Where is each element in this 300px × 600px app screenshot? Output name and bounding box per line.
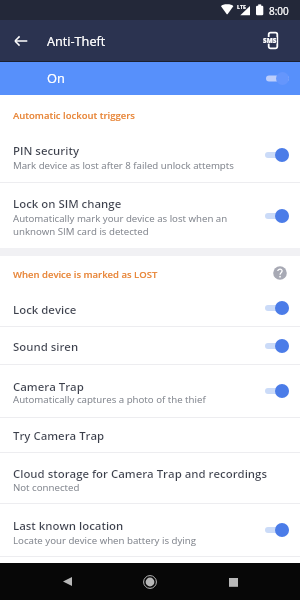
staticText: LTE xyxy=(237,3,246,10)
button[interactable]: Sound siren xyxy=(0,327,300,364)
staticText: Mark device as lost after 8 failed unloc… xyxy=(13,159,245,172)
button[interactable]: On xyxy=(0,62,300,95)
button[interactable]: Home xyxy=(136,568,164,596)
button[interactable]: SMS commands xyxy=(258,25,288,55)
button[interactable]: Recent apps xyxy=(219,568,247,596)
staticText: Not connected xyxy=(13,481,283,494)
staticText: Locate your device when battery is dying xyxy=(13,534,245,547)
staticText: Automatically captures a photo of the th… xyxy=(13,393,245,406)
button[interactable]: PIN security xyxy=(0,128,300,182)
button[interactable]: Try Camera Trap xyxy=(0,418,300,452)
staticText: On xyxy=(47,69,65,86)
button[interactable]: Back xyxy=(53,568,81,596)
staticText: When device is marked as LOST xyxy=(13,268,158,281)
staticText: Camera Trap xyxy=(13,379,245,395)
button[interactable]: Back xyxy=(6,26,35,55)
staticText: Automatic lockout triggers xyxy=(13,109,135,122)
button[interactable]: Last known location xyxy=(0,504,300,556)
staticText: PIN security xyxy=(13,143,245,159)
staticText: Sound siren xyxy=(13,339,245,355)
staticText: SMS xyxy=(263,36,277,44)
staticText: Cloud storage for Camera Trap and record… xyxy=(13,466,283,482)
button[interactable]: Lock on SIM change xyxy=(0,183,300,248)
button[interactable]: Help xyxy=(271,264,289,282)
staticText: 8:00 xyxy=(269,4,289,18)
button[interactable]: Lock device xyxy=(0,289,300,326)
staticText: Try Camera Trap xyxy=(13,428,245,444)
staticText: Lock device xyxy=(13,302,245,318)
button[interactable]: Camera Trap xyxy=(0,365,300,417)
button[interactable]: Cloud storage for Camera Trap and record… xyxy=(0,453,300,503)
staticText: Anti-Theft xyxy=(47,32,106,49)
staticText: Automatically mark your device as lost w… xyxy=(13,212,237,238)
staticText: Last known location xyxy=(13,518,245,534)
staticText: Lock on SIM change xyxy=(13,196,237,212)
